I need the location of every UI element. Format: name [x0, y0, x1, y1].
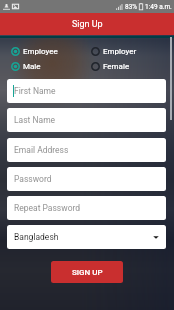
staticText: Last Name	[14, 115, 56, 125]
button[interactable]	[90, 44, 145, 59]
button[interactable]: Bangladesh	[7, 225, 166, 249]
button[interactable]	[10, 59, 65, 74]
staticText: Male	[23, 62, 41, 71]
button[interactable]: Password	[7, 167, 166, 191]
staticText: Female	[103, 62, 130, 71]
button[interactable]: First Name	[7, 79, 166, 103]
staticText: SIGN UP	[72, 268, 103, 277]
staticText: Sign Up	[72, 19, 103, 30]
staticText: Employee	[23, 47, 58, 56]
staticText: Employer	[103, 47, 137, 56]
button[interactable]: Email Address	[7, 138, 166, 162]
button[interactable]: Repeat Password	[7, 196, 166, 220]
button[interactable]: Last Name	[7, 108, 166, 132]
staticText: Email Address	[14, 145, 69, 155]
staticText: 83%	[125, 3, 138, 11]
button[interactable]	[90, 59, 145, 74]
staticText: Password	[14, 174, 52, 184]
button[interactable]	[10, 44, 65, 59]
button[interactable]: SIGN UP	[51, 261, 123, 283]
staticText: First Name	[14, 86, 56, 96]
staticText: Bangladesh	[14, 232, 59, 242]
staticText: 1:49 a.m.	[145, 3, 172, 11]
staticText: Repeat Password	[14, 203, 81, 213]
